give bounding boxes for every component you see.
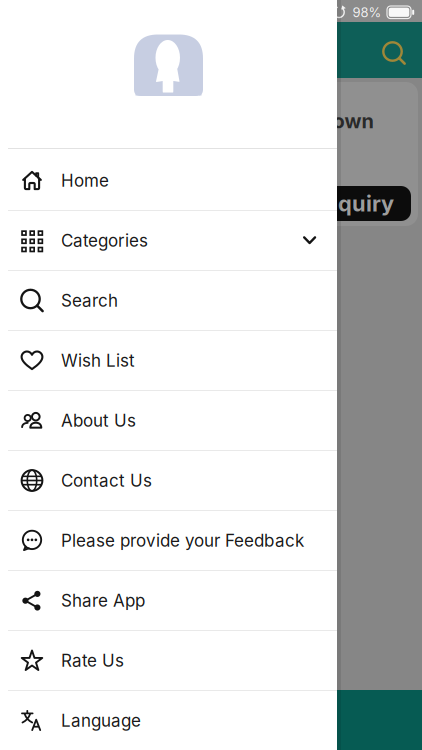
staticText: 98% <box>352 4 381 20</box>
button[interactable]: Search <box>0 271 337 331</box>
staticText: Language <box>61 710 141 731</box>
button[interactable]: Search <box>382 41 406 65</box>
button[interactable]: Categories <box>0 211 337 271</box>
button[interactable]: Enquiry <box>294 186 411 221</box>
button[interactable]: About Us <box>0 391 337 451</box>
button[interactable]: Home <box>0 151 337 211</box>
staticText: Town <box>320 109 373 133</box>
staticText: Please provide your Feedback <box>61 530 304 551</box>
staticText: Home <box>61 170 109 191</box>
staticText: Enquiry <box>311 190 394 217</box>
button[interactable]: Share App <box>0 571 337 631</box>
button[interactable]: Rate Us <box>0 631 337 691</box>
staticText: Categories <box>61 230 148 251</box>
button[interactable]: Wish List <box>0 331 337 391</box>
staticText: Search <box>61 290 118 311</box>
button[interactable]: Language <box>0 691 337 750</box>
staticText: Rate Us <box>61 650 124 671</box>
button[interactable]: Please provide your Feedback <box>0 511 337 571</box>
staticText: Share App <box>61 590 145 611</box>
staticText: Wish List <box>61 350 135 371</box>
staticText: About Us <box>61 410 136 431</box>
button[interactable]: Contact Us <box>0 451 337 511</box>
staticText: Contact Us <box>61 470 152 491</box>
